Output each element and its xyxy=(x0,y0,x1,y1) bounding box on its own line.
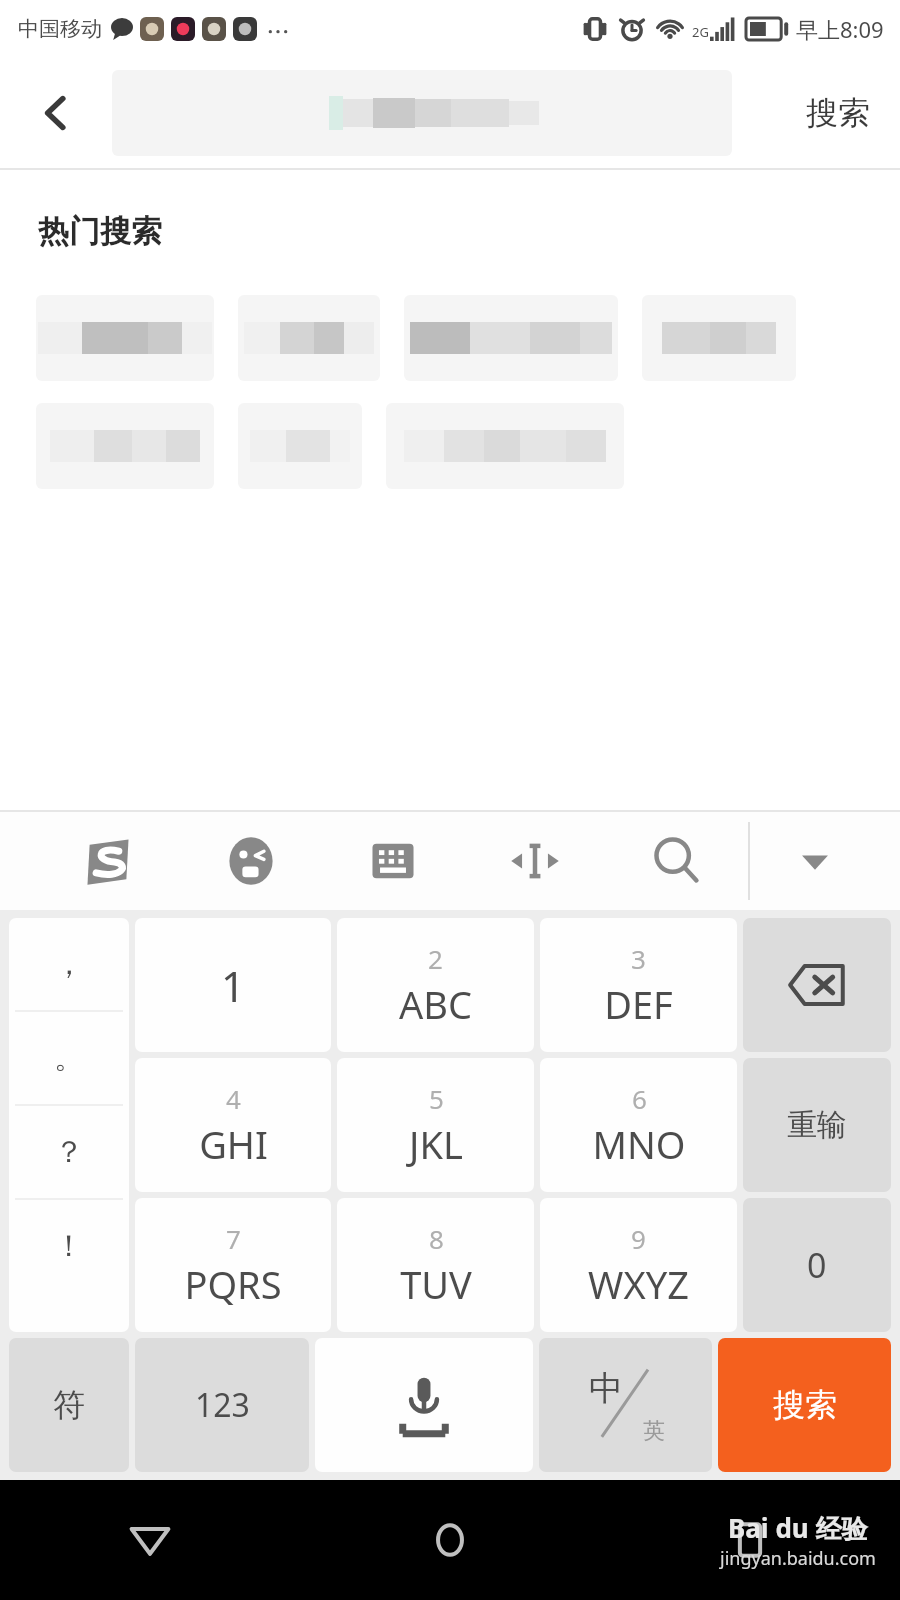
button[interactable]: 3 xyxy=(540,918,737,1052)
button[interactable] xyxy=(238,403,362,489)
button[interactable]: 4 xyxy=(135,1058,331,1192)
staticText: 2 xyxy=(428,941,443,976)
button[interactable]: Search xyxy=(606,812,748,910)
staticText: 搜索 xyxy=(773,1385,837,1425)
button[interactable]: 6 xyxy=(540,1058,737,1192)
staticText: 4 xyxy=(226,1081,241,1116)
button[interactable]: 。 xyxy=(9,1012,129,1104)
button[interactable]: 1 xyxy=(135,918,331,1052)
staticText: 0 xyxy=(807,1242,827,1288)
button[interactable]: 5 xyxy=(337,1058,534,1192)
staticText: GHI xyxy=(199,1118,268,1170)
button[interactable] xyxy=(404,295,618,381)
staticText: 7 xyxy=(226,1221,241,1256)
staticText: 5 xyxy=(429,1081,444,1116)
staticText: ， xyxy=(54,945,84,983)
staticText: 搜索 xyxy=(806,93,870,133)
staticText: JKL xyxy=(409,1118,463,1170)
staticText: 。 xyxy=(54,1039,84,1077)
button[interactable] xyxy=(36,403,214,489)
button[interactable]: Back xyxy=(0,1480,300,1600)
button[interactable]: 123 xyxy=(135,1338,309,1472)
staticText: ！ xyxy=(54,1227,84,1265)
button[interactable]: Emoji xyxy=(179,812,322,910)
staticText: 6 xyxy=(632,1081,647,1116)
staticText: 符 xyxy=(53,1385,85,1425)
button[interactable]: 2 xyxy=(337,918,534,1052)
staticText: MNO xyxy=(592,1118,686,1170)
button[interactable]: ？ xyxy=(9,1106,129,1198)
button[interactable]: 中 xyxy=(539,1338,712,1472)
button[interactable]: 7 xyxy=(135,1198,331,1332)
staticText: Bai du 经验 xyxy=(728,1510,868,1546)
staticText: 中国移动 xyxy=(18,16,102,42)
staticText: DEF xyxy=(604,978,673,1030)
button[interactable]: 0 xyxy=(743,1198,891,1332)
button[interactable]: Back xyxy=(0,58,112,168)
button[interactable]: Voice input and space xyxy=(315,1338,533,1472)
button[interactable] xyxy=(386,403,624,489)
button[interactable] xyxy=(238,295,380,381)
staticText: 英 xyxy=(643,1417,665,1445)
button[interactable]: 9 xyxy=(540,1198,737,1332)
button[interactable]: ， xyxy=(9,918,129,1010)
staticText: 中 xyxy=(589,1367,623,1410)
staticText: 热门搜索 xyxy=(38,212,162,251)
staticText: 123 xyxy=(195,1383,250,1427)
button[interactable]: Home xyxy=(300,1480,600,1600)
staticText: 早上8:09 xyxy=(796,14,884,44)
staticText: 重输 xyxy=(787,1106,847,1144)
staticText: TUV xyxy=(400,1258,472,1310)
staticText: 3 xyxy=(631,941,646,976)
staticText: 2G xyxy=(692,23,709,41)
button[interactable]: Sogou input xyxy=(36,812,179,910)
staticText: 1 xyxy=(221,957,246,1014)
button[interactable]: Keyboard layout xyxy=(322,812,464,910)
button[interactable]: Move cursor xyxy=(464,812,606,910)
button[interactable]: Recents xyxy=(600,1480,900,1600)
staticText: WXYZ xyxy=(588,1258,689,1310)
staticText: jingyan.baidu.com xyxy=(720,1546,876,1571)
button[interactable] xyxy=(642,295,796,381)
staticText: ？ xyxy=(54,1133,84,1171)
staticText: ABC xyxy=(399,978,472,1030)
button[interactable]: 重输 xyxy=(743,1058,891,1192)
staticText: 8 xyxy=(429,1221,444,1256)
button[interactable]: 8 xyxy=(337,1198,534,1332)
button[interactable]: 搜索 xyxy=(718,1338,891,1472)
button[interactable]: 符 xyxy=(9,1338,129,1472)
button[interactable]: Hide keyboard xyxy=(750,812,880,910)
button[interactable] xyxy=(36,295,214,381)
button[interactable]: Backspace xyxy=(743,918,891,1052)
button[interactable]: 搜索 xyxy=(780,58,896,168)
button[interactable]: ！ xyxy=(9,1200,129,1292)
button[interactable] xyxy=(112,70,732,156)
staticText: PQRS xyxy=(184,1258,282,1310)
staticText: 9 xyxy=(631,1221,646,1256)
